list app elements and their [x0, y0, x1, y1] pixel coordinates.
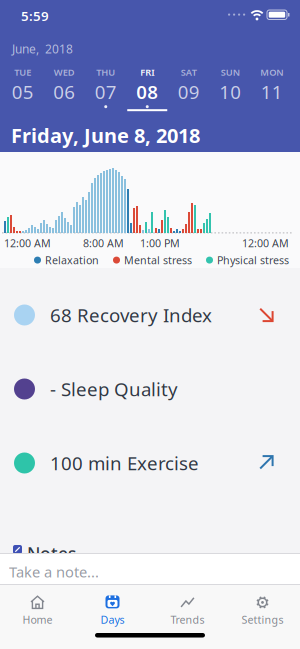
staticText: Physical stress — [217, 253, 289, 267]
button[interactable]: 68 Recovery Index — [0, 278, 300, 352]
staticText: 09 — [178, 79, 200, 104]
staticText: 5:59 — [21, 7, 49, 25]
staticText: 1:00 PM — [140, 236, 180, 250]
button[interactable]: Days — [75, 589, 150, 633]
staticText: THU — [96, 66, 115, 78]
button[interactable]: TUE — [2, 66, 43, 111]
button[interactable]: Take a note... — [0, 553, 300, 584]
staticText: 68 Recovery Index — [50, 303, 212, 327]
button[interactable]: Trends — [150, 589, 225, 633]
staticText: 05 — [12, 79, 34, 104]
staticText: June, 2018 — [12, 41, 73, 57]
staticText: SUN — [221, 66, 240, 78]
staticText: Take a note... — [9, 562, 99, 581]
staticText: 11 — [261, 79, 283, 104]
staticText: - Sleep Quality — [50, 377, 178, 401]
staticText: 100 min Exercise — [50, 451, 199, 475]
button[interactable]: WED — [43, 66, 85, 111]
staticText: 10 — [219, 79, 241, 104]
button[interactable]: FRI — [126, 66, 168, 111]
staticText: Trends — [170, 612, 204, 627]
staticText: Home — [22, 612, 52, 627]
button[interactable]: Settings — [225, 589, 300, 633]
staticText: Days — [100, 612, 124, 627]
staticText: 8:00 AM — [83, 236, 124, 250]
button[interactable]: MON — [251, 66, 292, 111]
button[interactable]: THU — [85, 66, 126, 111]
staticText: 06 — [53, 79, 75, 104]
staticText: Friday, June 8, 2018 — [11, 122, 200, 149]
staticText: WED — [54, 66, 75, 78]
staticText: Settings — [241, 612, 283, 627]
staticText: 08 — [136, 79, 158, 104]
button[interactable]: - Sleep Quality — [0, 352, 300, 426]
staticText: Mental stress — [124, 253, 192, 267]
staticText: FRI — [140, 66, 154, 78]
button[interactable]: SAT — [168, 66, 209, 111]
button[interactable]: Home — [0, 589, 75, 633]
staticText: MON — [260, 66, 283, 78]
staticText: TUE — [14, 66, 31, 78]
button[interactable]: 100 min Exercise — [0, 426, 300, 500]
staticText: Notes — [27, 542, 76, 565]
staticText: 12:00 AM — [242, 236, 289, 250]
staticText: Relaxation — [45, 253, 99, 267]
staticText: 12:00 AM — [4, 236, 51, 250]
staticText: SAT — [181, 66, 197, 78]
button[interactable]: SUN — [209, 66, 251, 111]
staticText: 07 — [95, 79, 117, 104]
